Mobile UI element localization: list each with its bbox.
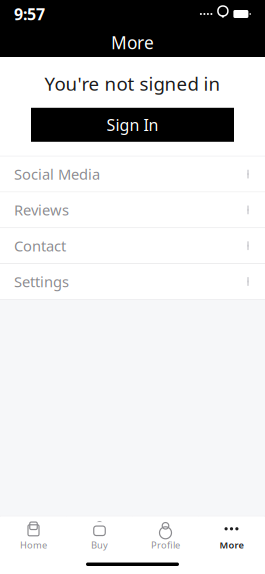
button[interactable]: Reviews: [0, 192, 265, 227]
staticText: Profile: [151, 539, 180, 551]
button[interactable]: Buy: [66, 516, 132, 556]
staticText: Social Media: [14, 164, 100, 184]
button[interactable]: Profile: [132, 516, 198, 556]
staticText: You're not signed in: [44, 71, 220, 96]
button[interactable]: Sign In: [31, 108, 234, 142]
staticText: Sign In: [106, 114, 158, 135]
staticText: Settings: [14, 272, 69, 291]
staticText: Contact: [14, 236, 66, 255]
staticText: Home: [20, 539, 47, 551]
button[interactable]: Social Media: [0, 157, 265, 192]
staticText: Reviews: [14, 200, 69, 220]
staticText: More: [111, 31, 154, 54]
button[interactable]: Settings: [0, 264, 265, 299]
staticText: 9:57: [14, 3, 45, 25]
staticText: Buy: [91, 539, 108, 551]
button[interactable]: Home: [0, 516, 66, 556]
staticText: More: [219, 539, 243, 551]
button[interactable]: Contact: [0, 228, 265, 263]
button[interactable]: More: [198, 516, 264, 556]
